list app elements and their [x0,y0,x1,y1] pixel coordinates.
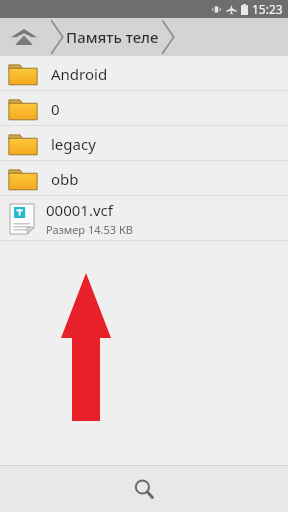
staticText: 15:23 [252,1,283,17]
button[interactable]: 0 [0,91,288,126]
staticText: Память теле [66,27,159,47]
staticText: legacy [51,134,96,154]
staticText: Android [51,64,108,84]
other: Arrow pointing up [61,273,111,421]
staticText: 00001.vcf [46,200,113,220]
staticText: Размер 14.53 КВ [46,222,133,237]
button[interactable]: legacy [0,126,288,161]
button[interactable]: Android [0,56,288,91]
button[interactable]: Search [96,466,192,512]
button[interactable]: obb [0,161,288,196]
button[interactable]: Home [0,18,48,56]
button[interactable]: 00001.vcf [0,196,288,241]
staticText: 0 [51,99,60,119]
button[interactable]: Память теле [66,18,159,56]
staticText: obb [51,169,79,189]
